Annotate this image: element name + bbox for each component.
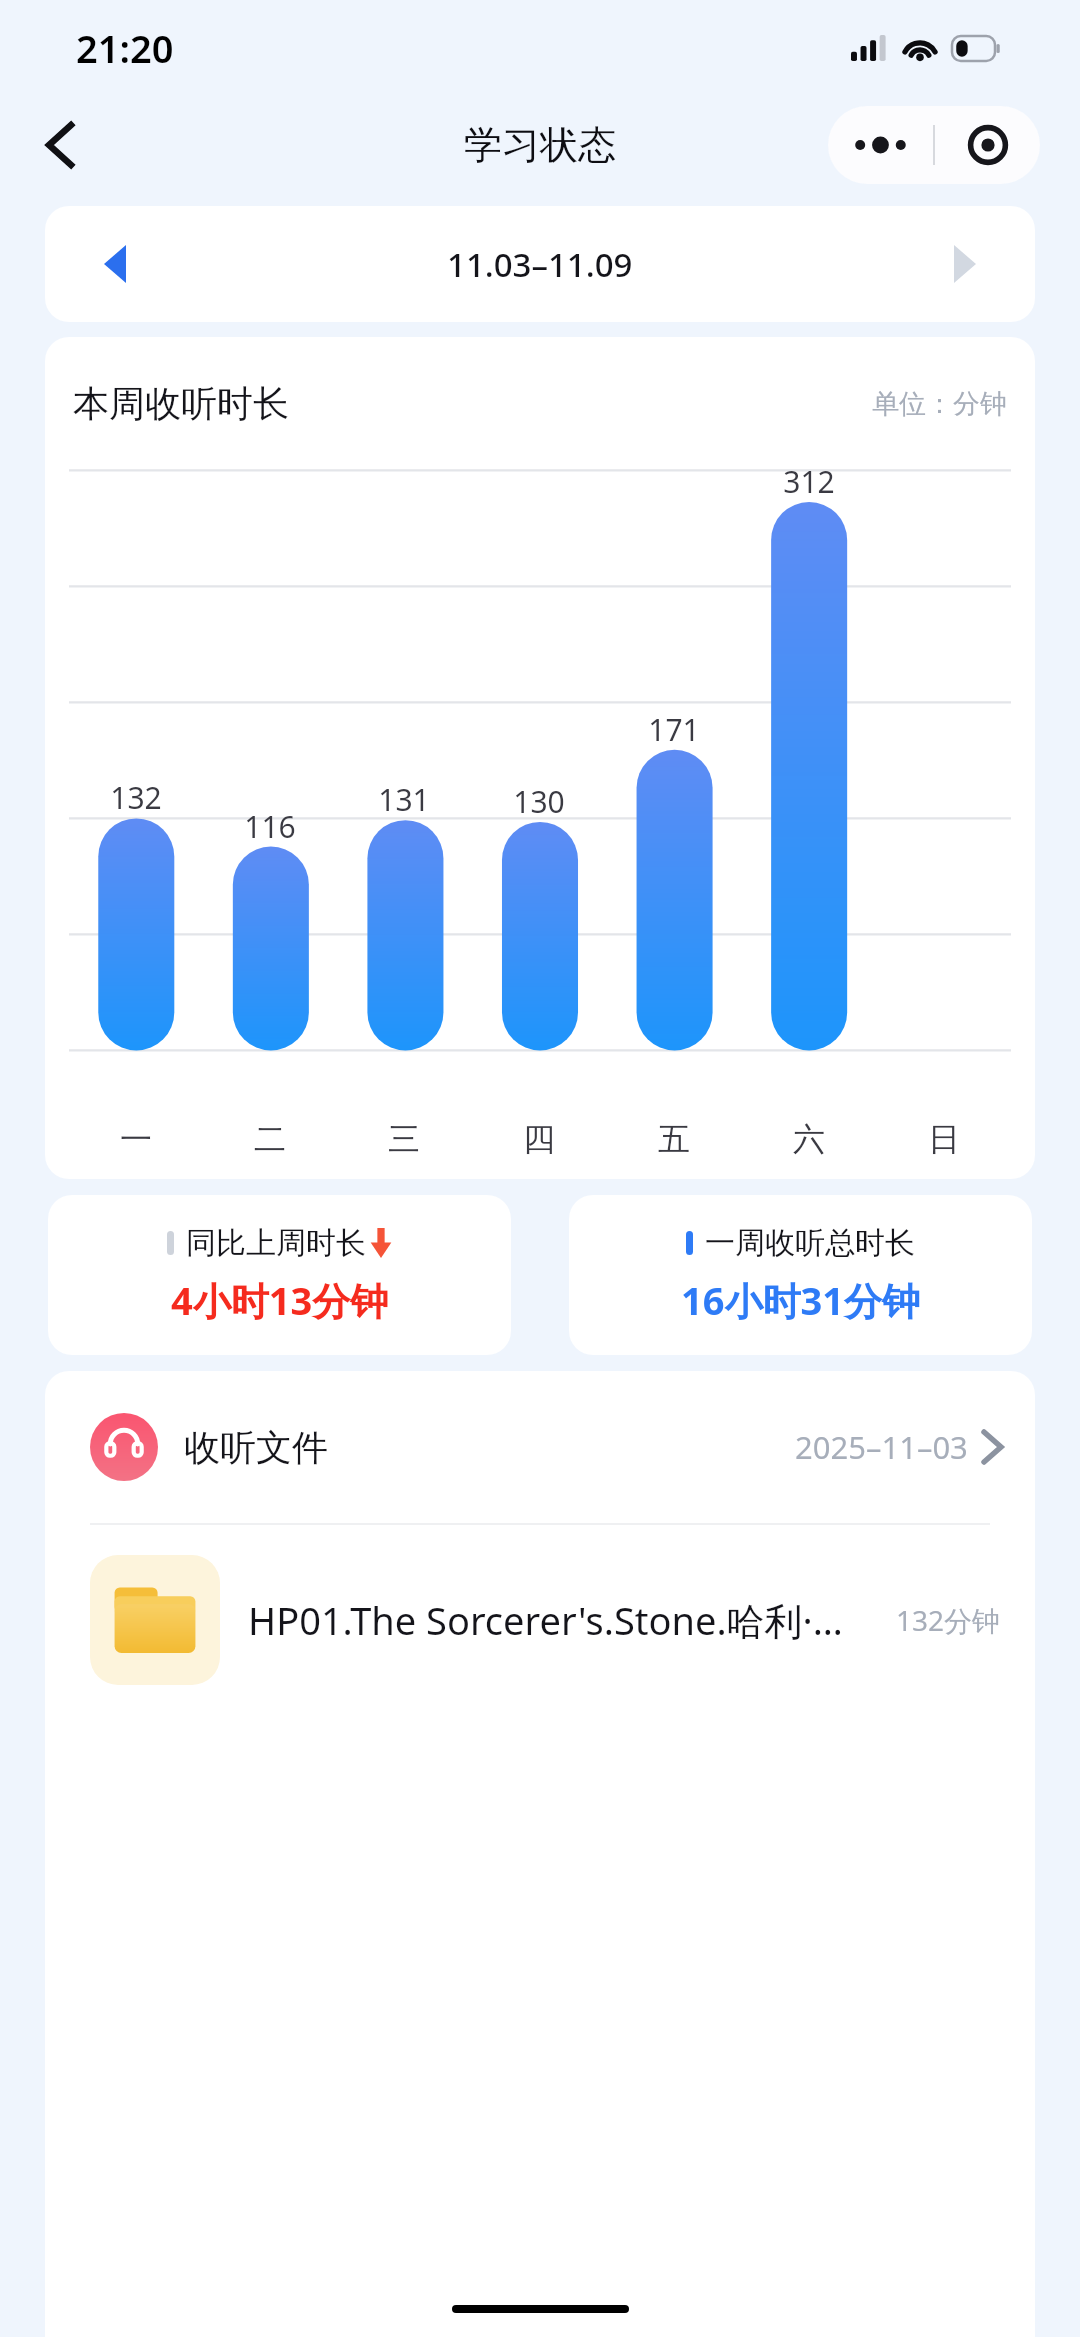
staticText: 本周收听时长 xyxy=(73,381,289,426)
staticText: 130 xyxy=(513,781,565,822)
staticText: 单位：分钟 xyxy=(872,387,1007,421)
button[interactable]: Back xyxy=(18,103,102,187)
button[interactable]: Previous week xyxy=(73,222,157,306)
button[interactable]: HP01.The Sorcerer's.Stone.哈利·… xyxy=(90,1555,1001,1685)
button[interactable]: More xyxy=(828,106,933,184)
button[interactable]: Close mini program xyxy=(935,106,1040,184)
staticText: 一周收听总时长 xyxy=(705,1224,915,1262)
button[interactable]: 同比上周时长 xyxy=(48,1195,511,1355)
button[interactable]: 一周收听总时长 xyxy=(569,1195,1032,1355)
staticText: 21:20 xyxy=(76,22,174,74)
staticText: 五 xyxy=(658,1119,690,1159)
staticText: 16小时31分钟 xyxy=(681,1274,920,1326)
button[interactable]: 收听文件 xyxy=(45,1371,1035,1523)
staticText: 2025–11–03 xyxy=(795,1426,968,1468)
staticText: 132 xyxy=(110,777,162,818)
staticText: 4小时13分钟 xyxy=(171,1274,389,1326)
staticText: 二 xyxy=(254,1119,286,1159)
staticText: 四 xyxy=(523,1119,555,1159)
staticText: 132分钟 xyxy=(896,1601,1001,1639)
staticText: 11.03–11.09 xyxy=(447,242,633,287)
button[interactable]: Next week xyxy=(923,222,1007,306)
staticText: 六 xyxy=(793,1119,825,1159)
staticText: 同比上周时长 xyxy=(186,1224,366,1262)
staticText: 收听文件 xyxy=(184,1425,328,1470)
staticText: 学习状态 xyxy=(464,121,616,169)
staticText: 312 xyxy=(783,461,835,502)
button[interactable]: 本周收听时长 xyxy=(45,337,1035,1179)
staticText: 131 xyxy=(378,779,430,820)
staticText: HP01.The Sorcerer's.Stone.哈利·… xyxy=(248,1594,886,1646)
staticText: 三 xyxy=(388,1119,420,1159)
staticText: 日 xyxy=(928,1119,960,1159)
staticText: 一 xyxy=(120,1119,152,1159)
staticText: 116 xyxy=(244,806,296,847)
staticText: 171 xyxy=(648,709,700,750)
